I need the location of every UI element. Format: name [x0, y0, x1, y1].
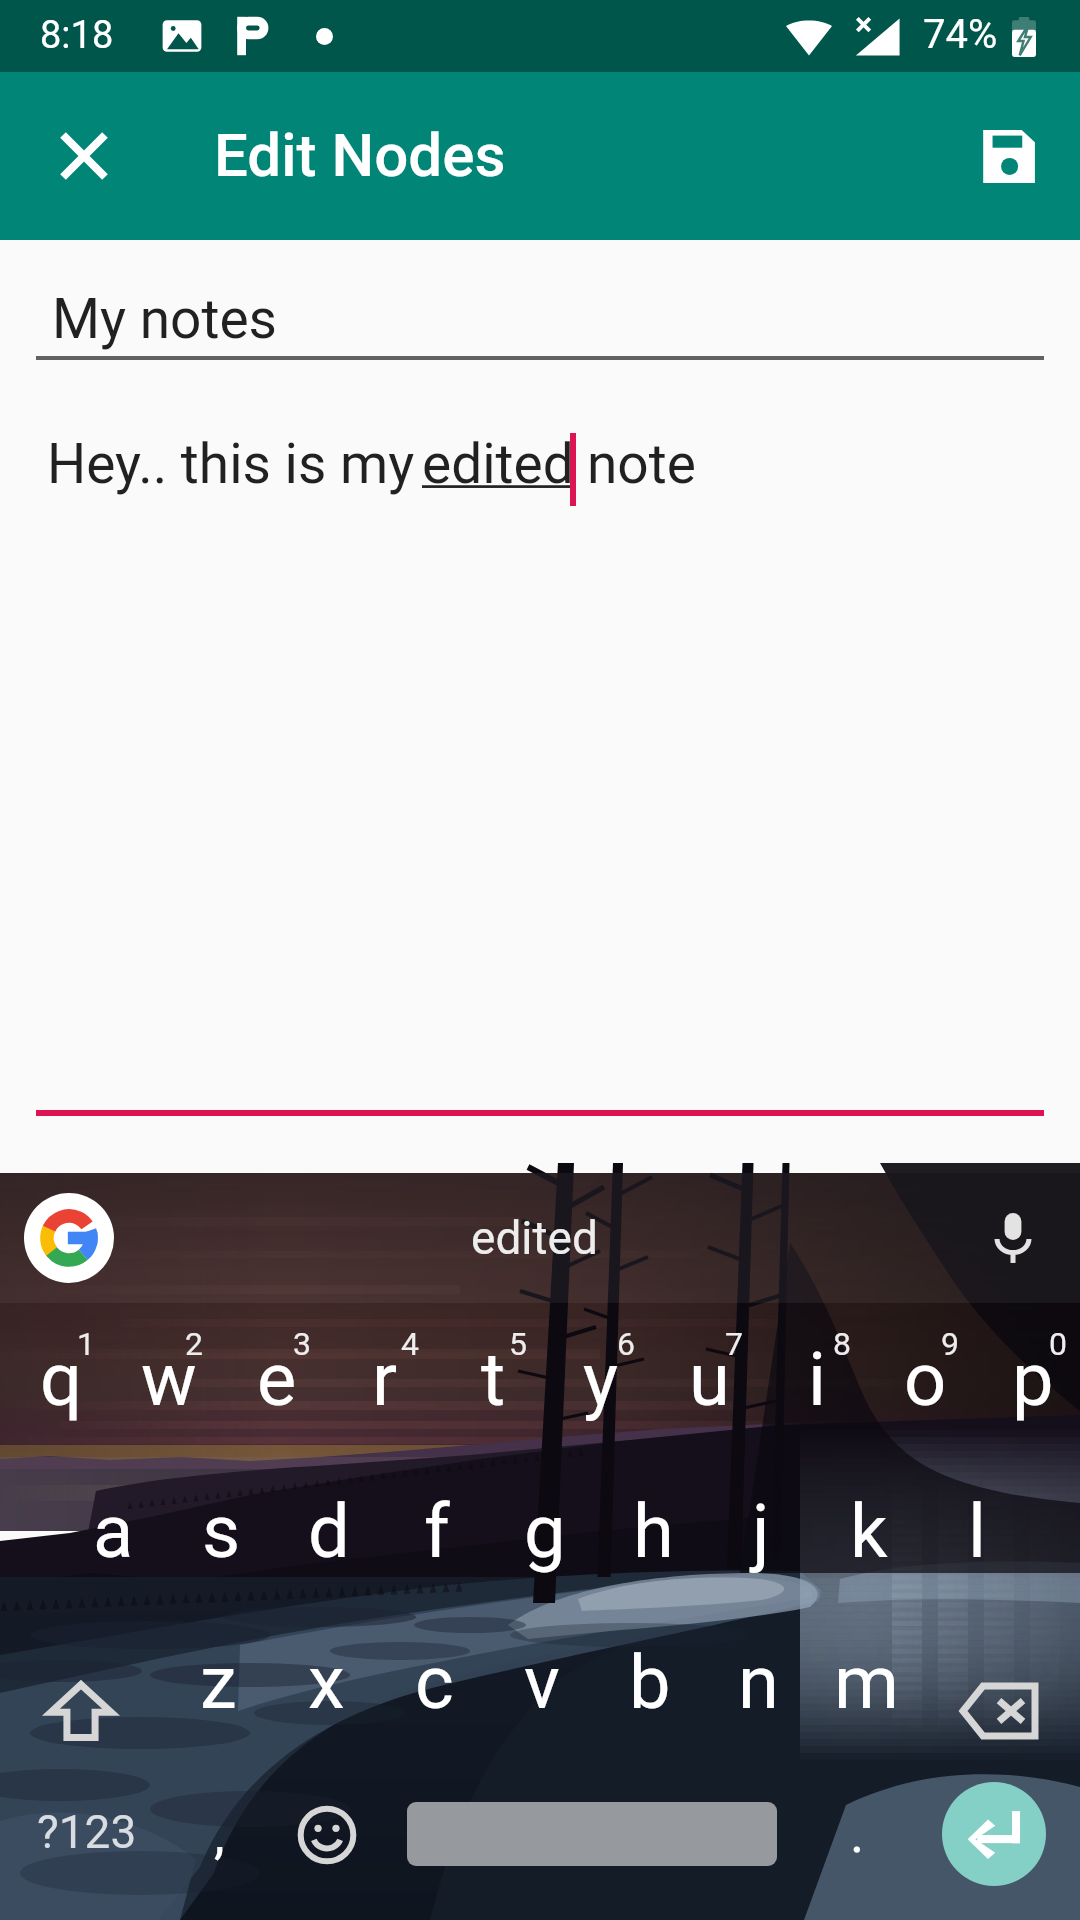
staticText: 2 — [185, 1325, 203, 1363]
staticText: a — [93, 1488, 134, 1575]
button[interactable]: 1 — [0, 1303, 108, 1478]
button[interactable]: 3 — [216, 1303, 324, 1478]
staticText: s — [202, 1488, 241, 1575]
button[interactable]: a — [54, 1478, 162, 1633]
staticText: 7 — [725, 1325, 743, 1363]
button[interactable]: 4 — [324, 1303, 432, 1478]
button[interactable]: 7 — [648, 1303, 756, 1478]
staticText: Hey.. this is my — [47, 432, 428, 496]
staticText: . — [850, 1802, 865, 1865]
staticText: p — [1012, 1336, 1054, 1423]
button[interactable]: 2 — [108, 1303, 216, 1478]
button[interactable]: v — [486, 1633, 594, 1788]
button[interactable]: Google search — [24, 1193, 114, 1283]
staticText: , — [214, 1803, 225, 1866]
staticText: x — [308, 1639, 345, 1726]
staticText: o — [904, 1336, 947, 1423]
button[interactable]: Enter — [920, 1788, 1072, 1920]
staticText: ?123 — [37, 1805, 137, 1859]
staticText: r — [372, 1336, 398, 1423]
staticText: 0 — [1049, 1325, 1067, 1363]
staticText: 5 — [509, 1325, 527, 1363]
staticText: 8 — [833, 1325, 851, 1363]
button[interactable]: m — [810, 1633, 918, 1788]
button[interactable]: d — [270, 1478, 378, 1633]
staticText: 74% — [923, 11, 998, 58]
button[interactable]: l — [918, 1478, 1026, 1633]
button[interactable] — [380, 1788, 804, 1920]
button[interactable]: edited — [471, 1211, 598, 1265]
button[interactable]: 9 — [864, 1303, 972, 1478]
button[interactable]: n — [702, 1633, 810, 1788]
button[interactable]: f — [378, 1478, 486, 1633]
button[interactable]: h — [594, 1478, 702, 1633]
staticText: j — [752, 1488, 770, 1575]
staticText: v — [524, 1639, 560, 1726]
button[interactable]: , — [172, 1788, 284, 1920]
staticText: 3 — [293, 1325, 311, 1363]
staticText: q — [40, 1336, 83, 1423]
staticText: 9 — [941, 1325, 959, 1363]
button[interactable]: Emoji — [278, 1788, 374, 1920]
staticText: b — [629, 1639, 671, 1726]
staticText: My notes — [52, 287, 277, 351]
staticText: note — [587, 432, 696, 496]
staticText: l — [968, 1488, 986, 1575]
button[interactable]: g — [486, 1478, 594, 1633]
button[interactable]: ?123 — [8, 1788, 168, 1920]
staticText: n — [738, 1639, 779, 1726]
staticText: u — [689, 1336, 730, 1423]
button[interactable]: s — [162, 1478, 270, 1633]
button[interactable]: 0 — [972, 1303, 1080, 1478]
staticText: k — [850, 1488, 888, 1575]
button[interactable]: 8 — [756, 1303, 864, 1478]
button[interactable]: Voice input — [970, 1195, 1056, 1281]
staticText: d — [308, 1488, 350, 1575]
button[interactable]: z — [162, 1633, 270, 1788]
staticText: e — [257, 1336, 297, 1423]
staticText: h — [633, 1488, 674, 1575]
staticText: Edit Nodes — [214, 120, 506, 190]
button[interactable]: Backspace — [918, 1633, 1080, 1788]
staticText: 1 — [77, 1325, 95, 1363]
staticText: c — [415, 1639, 454, 1726]
staticText: m — [834, 1639, 899, 1726]
button[interactable]: j — [702, 1478, 810, 1633]
staticText: 4 — [401, 1325, 419, 1363]
staticText: i — [808, 1336, 826, 1423]
button[interactable]: c — [378, 1633, 486, 1788]
button[interactable]: Save — [960, 108, 1056, 204]
button[interactable]: Close — [36, 108, 132, 204]
staticText: edited — [471, 1211, 598, 1265]
staticText: g — [524, 1488, 566, 1575]
staticText: 6 — [617, 1325, 635, 1363]
staticText: edited — [422, 432, 574, 496]
staticText: y — [583, 1336, 619, 1423]
button[interactable]: 6 — [540, 1303, 648, 1478]
staticText: w — [141, 1336, 197, 1423]
button[interactable]: x — [270, 1633, 378, 1788]
button[interactable]: k — [810, 1478, 918, 1633]
button[interactable]: Shift — [0, 1633, 162, 1788]
staticText: f — [424, 1488, 450, 1575]
button[interactable]: . — [812, 1788, 904, 1920]
button[interactable]: b — [594, 1633, 702, 1788]
button[interactable]: 5 — [432, 1303, 540, 1478]
staticText: t — [481, 1336, 506, 1423]
staticText: z — [200, 1639, 237, 1726]
staticText: 8:18 — [40, 13, 114, 58]
